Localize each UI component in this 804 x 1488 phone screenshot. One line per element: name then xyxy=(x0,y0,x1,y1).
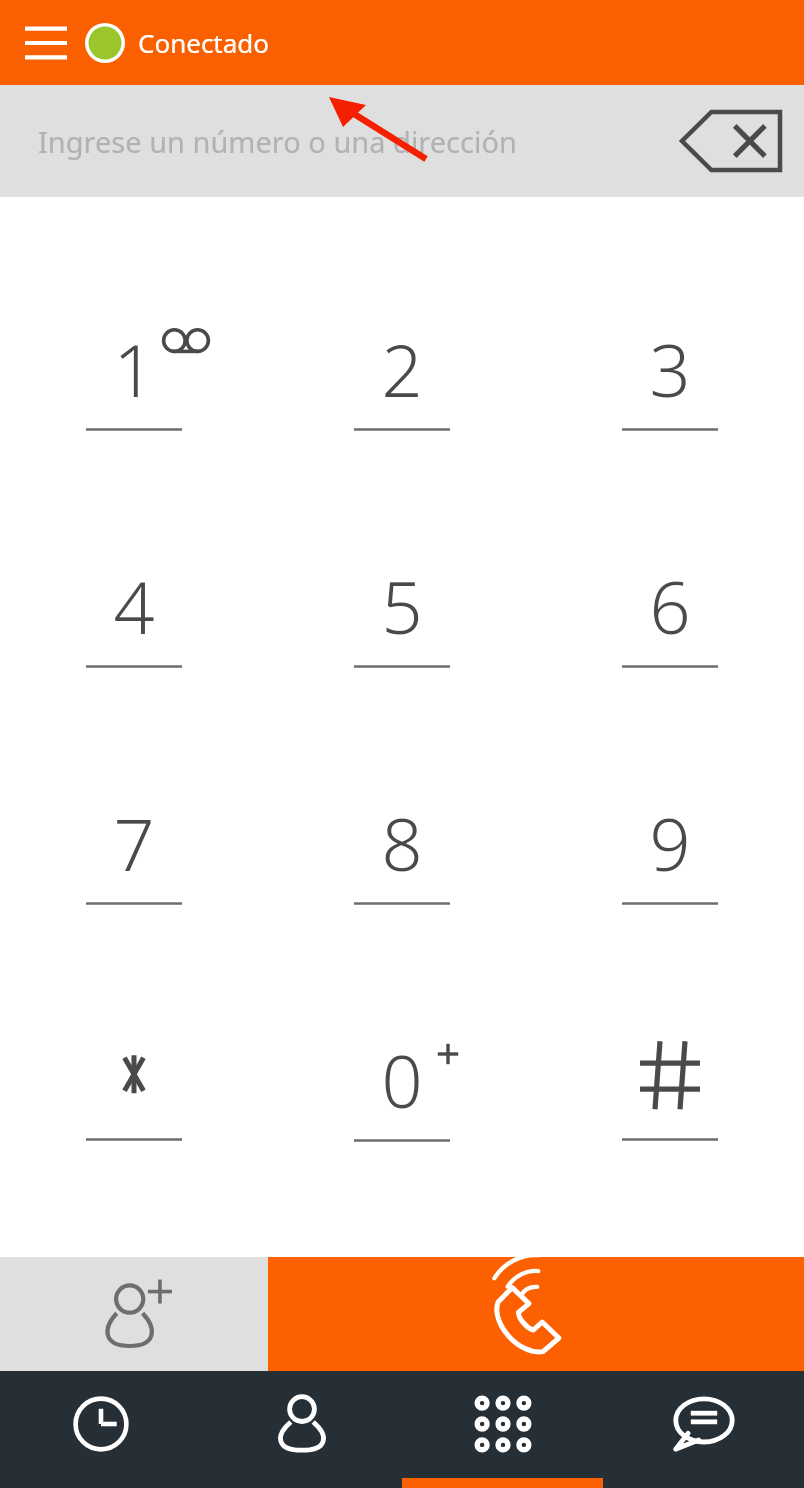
button[interactable]: Recent xyxy=(0,1371,201,1488)
button[interactable]: Messages xyxy=(603,1371,804,1488)
staticText: 0 xyxy=(381,1031,423,1129)
button[interactable]: 6 xyxy=(536,494,804,731)
staticText: 7 xyxy=(113,794,155,892)
button[interactable]: 0 xyxy=(268,968,536,1205)
button[interactable]: Add contact xyxy=(0,1257,268,1371)
button[interactable] xyxy=(536,968,804,1205)
button[interactable]: 9 xyxy=(536,731,804,968)
button[interactable]: Call xyxy=(268,1257,804,1371)
button[interactable]: 5 xyxy=(268,494,536,731)
button[interactable]: 3 xyxy=(536,257,804,494)
staticText: 5 xyxy=(381,557,423,655)
staticText: 4 xyxy=(113,557,155,655)
button[interactable]: 8 xyxy=(268,731,536,968)
button[interactable] xyxy=(0,968,268,1205)
staticText: 9 xyxy=(649,794,691,892)
button[interactable]: Dialpad xyxy=(402,1371,603,1488)
staticText: 2 xyxy=(381,320,423,418)
button[interactable]: Menu xyxy=(18,15,74,71)
button[interactable]: 4 xyxy=(0,494,268,731)
staticText: 3 xyxy=(649,320,691,418)
staticText: 6 xyxy=(649,557,691,655)
button[interactable]: 2 xyxy=(268,257,536,494)
staticText: 8 xyxy=(381,794,423,892)
button[interactable]: 1 xyxy=(0,257,268,494)
staticText: Conectado xyxy=(138,25,270,60)
button[interactable]: 7 xyxy=(0,731,268,968)
staticText: Ingrese un número o una dirección xyxy=(38,122,517,161)
button[interactable]: Contacts xyxy=(201,1371,402,1488)
staticText: 1 xyxy=(113,320,155,418)
button[interactable]: Backspace xyxy=(676,98,786,184)
